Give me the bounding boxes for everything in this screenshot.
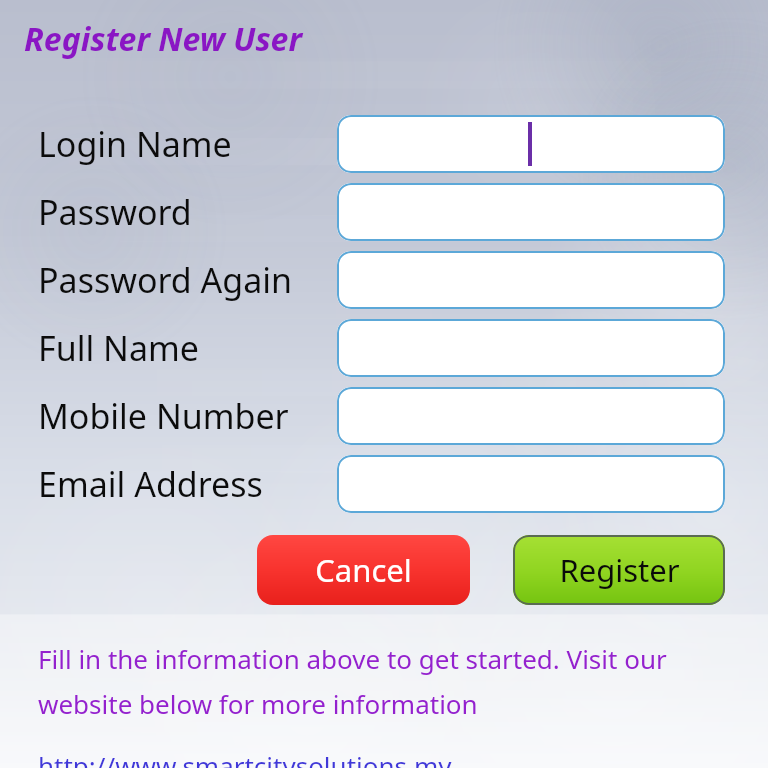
staticText: website below for more information xyxy=(38,686,478,721)
staticText: Password Again xyxy=(38,257,293,303)
button[interactable]: Email Address xyxy=(337,455,725,513)
staticText: Password xyxy=(38,189,192,235)
staticText: Email Address xyxy=(38,461,263,507)
staticText: Full Name xyxy=(38,325,199,371)
button[interactable]: Password xyxy=(337,183,725,241)
staticText: Register New User xyxy=(24,17,302,61)
staticText: Register xyxy=(559,549,680,591)
button[interactable]: Password Again xyxy=(337,251,725,309)
staticText: Cancel xyxy=(315,549,412,591)
button[interactable]: Full Name xyxy=(337,319,725,377)
button[interactable]: Register xyxy=(513,535,725,605)
staticText: Mobile Number xyxy=(38,393,289,439)
staticText: Fill in the information above to get sta… xyxy=(38,641,667,676)
button[interactable]: Cancel xyxy=(257,535,470,605)
staticText: Login Name xyxy=(38,121,232,167)
button[interactable]: Mobile Number xyxy=(337,387,725,445)
button[interactable]: Login Name xyxy=(337,115,725,173)
button[interactable]: http://www.smartcitysolutions.my xyxy=(38,748,452,768)
staticText: http://www.smartcitysolutions.my xyxy=(38,748,452,768)
